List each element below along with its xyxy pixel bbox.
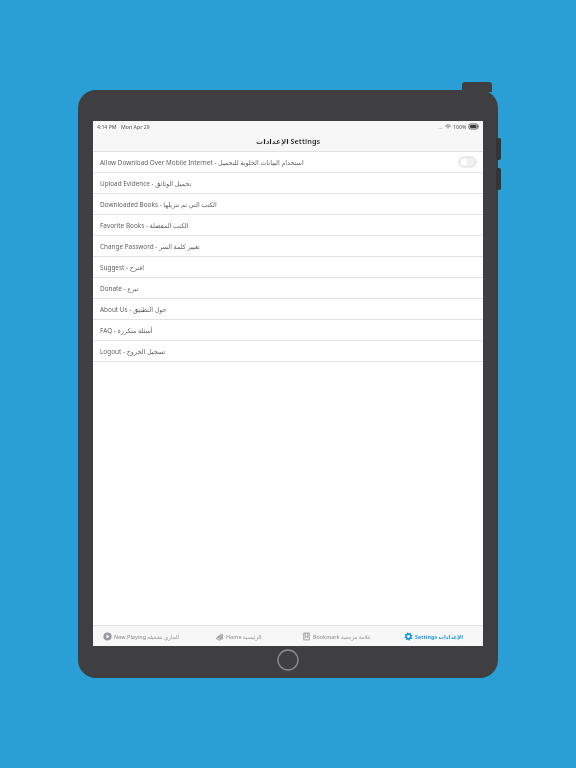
- button[interactable]: Home: [190, 626, 287, 646]
- staticText: 100%: [453, 123, 467, 130]
- button[interactable]: Favorite Books - الكتب المفضلة: [93, 215, 483, 235]
- button[interactable]: About Us - حول التطبيق: [93, 299, 483, 319]
- button[interactable]: Allow Download Over Mobile Internet - اس…: [93, 152, 483, 172]
- button[interactable]: Donate - تبرع: [93, 278, 483, 298]
- button[interactable]: Toggle mobile download: [459, 157, 476, 167]
- staticText: Settings الإعدادات: [415, 633, 464, 640]
- staticText: Suggest - اقترح: [100, 263, 145, 272]
- staticText: About Us - حول التطبيق: [100, 305, 167, 314]
- button[interactable]: Now Playing: [93, 626, 190, 646]
- staticText: Logout - تسجيل الخروج: [100, 347, 166, 356]
- staticText: FAQ - أسئلة متكررة: [100, 326, 153, 335]
- button[interactable]: Downloaded Books - الكتب التي تم تنزيلها: [93, 194, 483, 214]
- staticText: ...: [438, 123, 443, 130]
- staticText: Now Playing الجاري تشغيله: [114, 633, 180, 640]
- staticText: Allow Download Over Mobile Internet - اس…: [100, 158, 304, 167]
- staticText: 4:14 PM: [97, 123, 117, 130]
- button[interactable]: FAQ - أسئلة متكررة: [93, 320, 483, 340]
- button[interactable]: Suggest - اقترح: [93, 257, 483, 277]
- staticText: الإعدادات Settings: [256, 136, 321, 146]
- staticText: Favorite Books - الكتب المفضلة: [100, 221, 189, 230]
- button[interactable]: Logout - تسجيل الخروج: [93, 341, 483, 361]
- staticText: Bookmark علامة مرجعية: [313, 633, 371, 640]
- button[interactable]: Upload Evidence - تحميل الوثائق: [93, 173, 483, 193]
- staticText: Donate - تبرع: [100, 284, 139, 293]
- staticText: Home الرئيسية: [226, 633, 262, 640]
- staticText: Upload Evidence - تحميل الوثائق: [100, 179, 192, 188]
- staticText: Downloaded Books - الكتب التي تم تنزيلها: [100, 200, 217, 209]
- button[interactable]: Settings: [385, 626, 483, 646]
- staticText: Change Password - تغيير كلمة السر: [100, 242, 200, 251]
- button[interactable]: Change Password - تغيير كلمة السر: [93, 236, 483, 256]
- button[interactable]: Bookmark: [287, 626, 385, 646]
- staticText: Mon Apr 29: [121, 123, 150, 130]
